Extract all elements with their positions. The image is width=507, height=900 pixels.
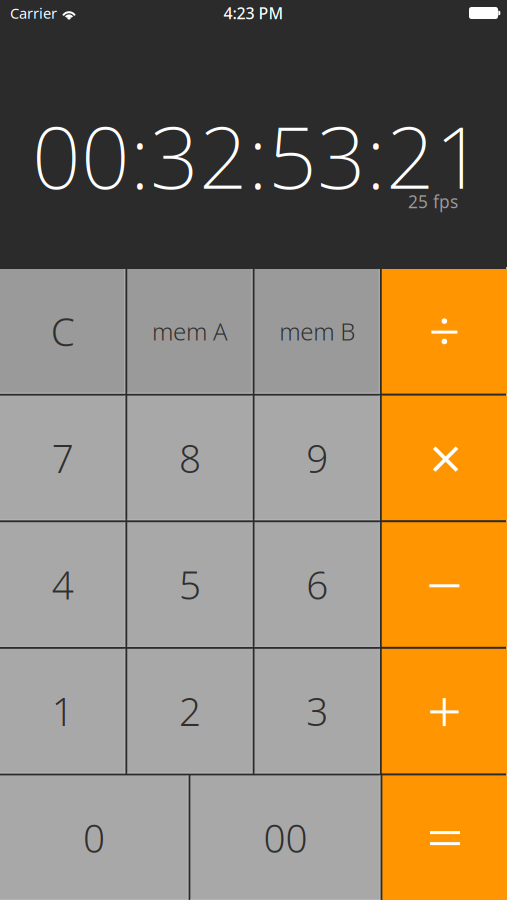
button[interactable]: 2 xyxy=(127,649,252,773)
button[interactable]: 4 xyxy=(0,522,125,647)
button[interactable]: 1 xyxy=(0,649,125,773)
staticText: mem A xyxy=(152,315,228,347)
staticText: 6 xyxy=(306,559,328,610)
button[interactable]: Multiply xyxy=(382,396,507,520)
staticText: 00:32:53:21 xyxy=(32,99,484,212)
button[interactable]: 5 xyxy=(127,522,252,647)
staticText: 8 xyxy=(179,432,201,483)
button[interactable]: 0 xyxy=(0,775,188,900)
button[interactable]: 8 xyxy=(127,396,252,520)
staticText: 1 xyxy=(52,685,74,737)
button[interactable]: 9 xyxy=(254,396,380,520)
button[interactable]: Equals xyxy=(382,775,507,900)
button[interactable]: 00 xyxy=(190,775,380,900)
staticText: 5 xyxy=(179,559,201,610)
staticText: 2 xyxy=(179,685,201,737)
staticText: 4 xyxy=(52,559,74,610)
button[interactable]: mem B xyxy=(254,269,380,394)
staticText: 0 xyxy=(83,812,105,863)
button[interactable]: 7 xyxy=(0,396,125,520)
staticText: 25 fps xyxy=(408,190,458,213)
staticText: 3 xyxy=(306,685,328,737)
staticText: Carrier xyxy=(10,3,57,23)
button[interactable]: C xyxy=(0,269,125,394)
staticText: mem B xyxy=(279,315,355,347)
staticText: 00 xyxy=(263,812,307,863)
staticText: 4:23 PM xyxy=(223,2,283,24)
button[interactable]: mem A xyxy=(127,269,252,394)
button[interactable]: 3 xyxy=(254,649,380,773)
button[interactable]: Divide xyxy=(382,269,507,394)
button[interactable]: 6 xyxy=(254,522,380,647)
staticText: C xyxy=(51,306,75,357)
staticText: 7 xyxy=(52,432,74,483)
button[interactable]: Subtract xyxy=(382,522,507,647)
button[interactable]: Add xyxy=(382,649,507,773)
staticText: 9 xyxy=(306,432,328,483)
